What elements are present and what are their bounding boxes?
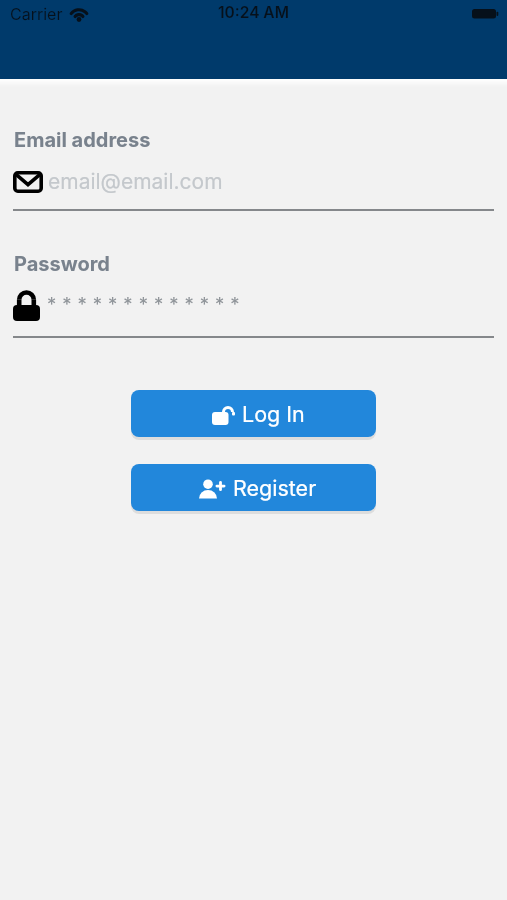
button[interactable]: Register [131,464,376,511]
staticText: 10:24 AM [218,3,289,22]
staticText: Register [233,475,317,501]
button[interactable]: email@email.com [13,162,494,211]
button[interactable]: Log In [131,390,376,437]
staticText: Carrier [10,4,63,23]
staticText: Log In [242,401,305,427]
staticText: Password [14,252,110,276]
staticText: email@email.com [48,169,223,194]
button[interactable]: * * * * * * * * * * * * * [13,287,494,339]
staticText: * * * * * * * * * * * * * [47,293,240,315]
staticText: Email address [14,128,151,152]
